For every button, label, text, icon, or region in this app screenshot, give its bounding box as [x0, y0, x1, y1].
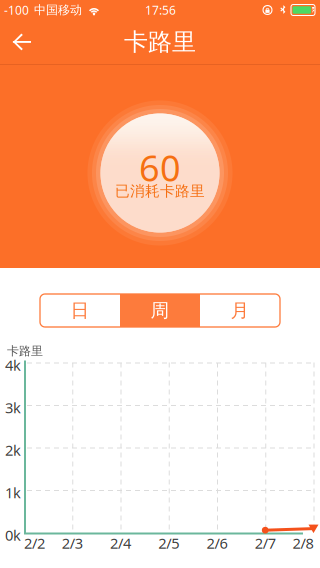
staticText: 2/3: [62, 533, 83, 553]
staticText: 4k: [5, 355, 21, 375]
staticText: 2k: [5, 440, 21, 460]
staticText: 日: [70, 299, 89, 322]
staticText: 已消耗卡路里: [115, 182, 205, 200]
button[interactable]: 月: [200, 294, 280, 327]
staticText: 卡路里: [7, 344, 43, 358]
staticText: 0k: [5, 525, 21, 545]
button[interactable]: 日: [40, 294, 120, 327]
staticText: 1k: [5, 483, 21, 502]
staticText: 17:56: [145, 2, 176, 18]
staticText: 3k: [5, 398, 21, 417]
staticText: 卡路里: [124, 27, 196, 57]
staticText: 2/7: [255, 533, 276, 553]
button[interactable]: 周: [120, 294, 200, 327]
staticText: 60: [139, 144, 181, 191]
button[interactable]: Back: [0, 20, 44, 64]
staticText: 2/6: [206, 533, 227, 553]
staticText: -100: [4, 2, 29, 18]
staticText: 中国移动: [34, 3, 82, 17]
staticText: 月: [230, 299, 249, 322]
staticText: 周: [150, 299, 169, 322]
staticText: 2/4: [110, 533, 131, 553]
staticText: 2/8: [292, 533, 313, 553]
staticText: 2/2: [24, 533, 45, 553]
staticText: 2/5: [158, 533, 179, 553]
